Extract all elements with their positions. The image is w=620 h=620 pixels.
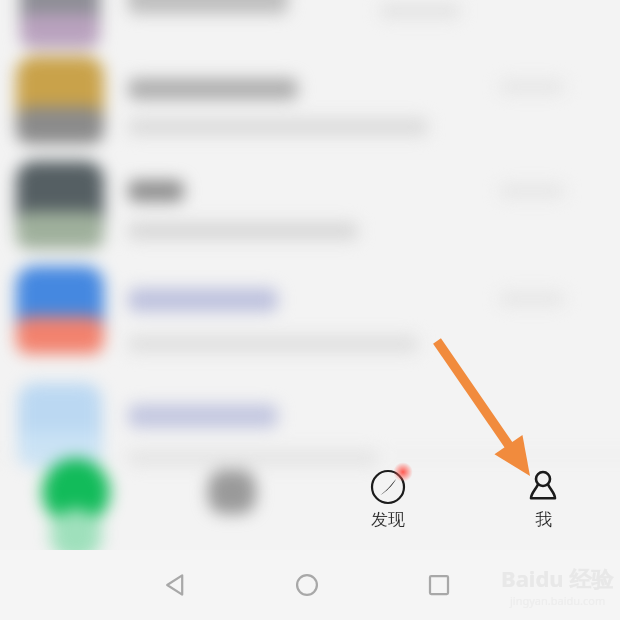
- button[interactable]: 微信: [0, 455, 155, 555]
- button[interactable]: Back: [148, 558, 202, 612]
- button[interactable]: 发现: [310, 455, 465, 555]
- button[interactable]: Home: [280, 558, 334, 612]
- button[interactable]: 我: [465, 455, 620, 555]
- button[interactable]: 通讯录: [155, 455, 310, 555]
- button[interactable]: Recent apps: [412, 558, 466, 612]
- staticText: Baidu 经验: [501, 563, 614, 593]
- staticText: 我: [535, 509, 552, 530]
- staticText: 发现: [371, 509, 405, 530]
